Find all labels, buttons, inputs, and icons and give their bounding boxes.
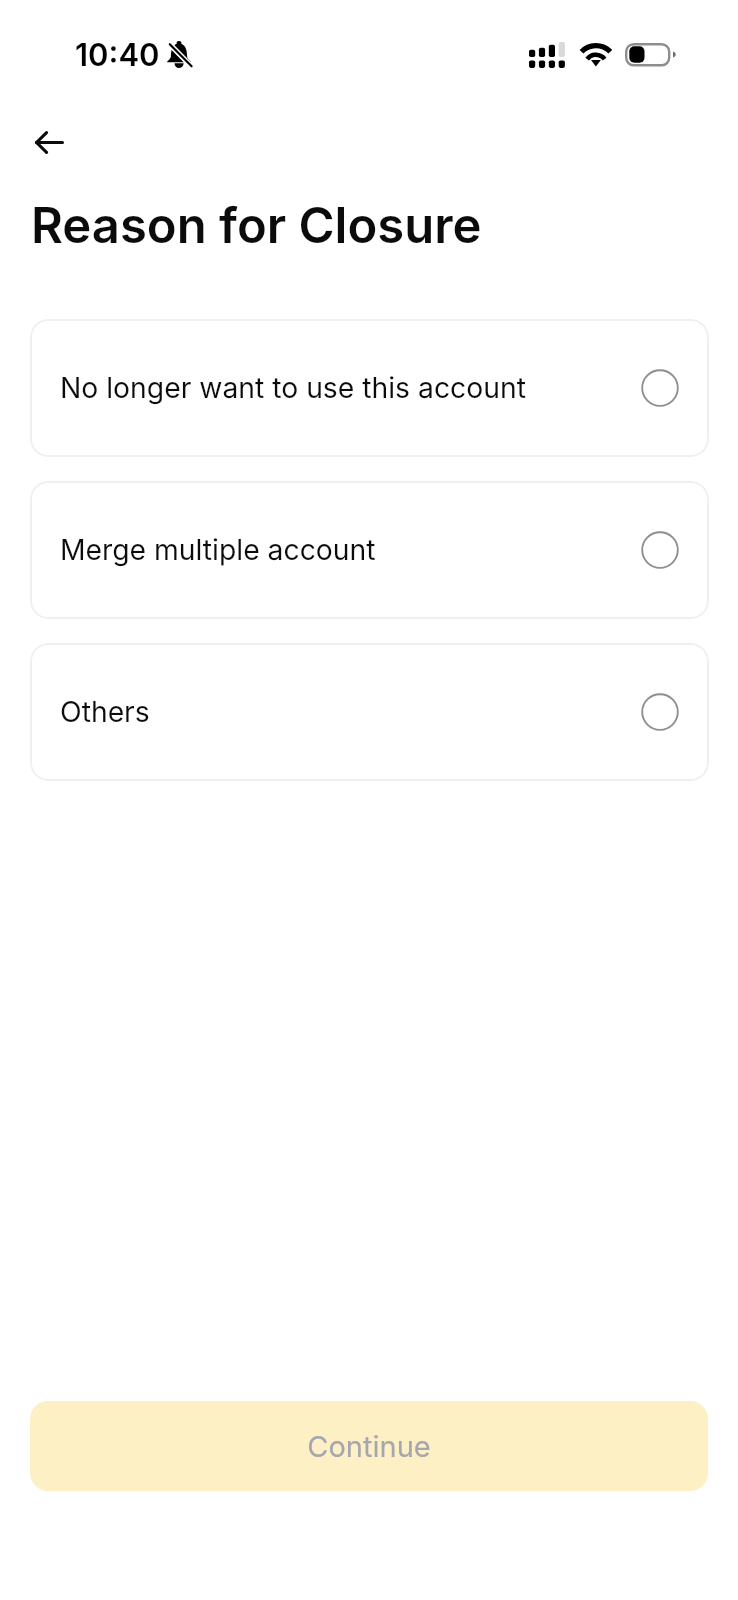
- staticText: Merge multiple account: [60, 533, 641, 567]
- staticText: 10:40: [75, 36, 160, 74]
- staticText: No longer want to use this account: [60, 371, 641, 405]
- button[interactable]: Back: [15, 108, 83, 176]
- button[interactable]: No longer want to use this account: [30, 319, 709, 457]
- staticText: Continue: [307, 1429, 431, 1464]
- button[interactable]: Merge multiple account: [30, 481, 709, 619]
- button[interactable]: Others: [30, 643, 709, 781]
- staticText: Reason for Closure: [31, 196, 482, 255]
- button[interactable]: Continue: [30, 1401, 708, 1491]
- staticText: Others: [60, 695, 641, 729]
